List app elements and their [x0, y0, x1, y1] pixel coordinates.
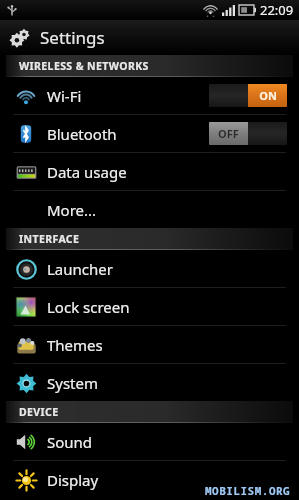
button[interactable]: Wi-Fi: [0, 77, 299, 114]
button[interactable]: Bluetooth: [0, 115, 299, 152]
staticText: Display: [47, 470, 287, 490]
button[interactable]: More...: [0, 191, 299, 228]
staticText: Wi-Fi: [47, 86, 209, 106]
staticText: DEVICE: [19, 405, 59, 419]
staticText: WIRELESS & NETWORKS: [19, 59, 149, 73]
staticText: ON: [259, 88, 277, 103]
staticText: Themes: [47, 335, 287, 355]
staticText: Launcher: [47, 259, 287, 279]
staticText: Bluetooth: [47, 124, 209, 144]
button[interactable]: Toggle off: [209, 122, 287, 145]
button[interactable]: Data usage: [0, 153, 299, 190]
button[interactable]: Display: [0, 461, 299, 498]
button[interactable]: Launcher: [0, 250, 299, 287]
staticText: Sound: [47, 432, 287, 452]
button[interactable]: Themes: [0, 326, 299, 363]
button[interactable]: Toggle on: [209, 84, 287, 107]
staticText: Lock screen: [47, 297, 287, 317]
button[interactable]: System: [0, 364, 299, 401]
staticText: Data usage: [47, 162, 287, 182]
staticText: Settings: [40, 26, 105, 49]
button[interactable]: Sound: [0, 423, 299, 460]
staticText: MOBILISM.ORG: [205, 483, 291, 498]
staticText: INTERFACE: [19, 232, 80, 246]
button[interactable]: Lock screen: [0, 288, 299, 325]
staticText: OFF: [218, 126, 239, 141]
staticText: System: [47, 373, 287, 393]
staticText: 22:09: [260, 1, 294, 19]
staticText: More...: [47, 200, 287, 220]
